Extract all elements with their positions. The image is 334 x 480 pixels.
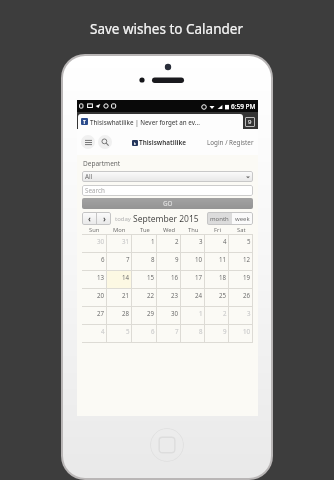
button[interactable]: 10 bbox=[181, 253, 205, 270]
button[interactable]: 4 bbox=[205, 235, 229, 252]
button[interactable]: 8 bbox=[181, 325, 205, 342]
staticText: Mon bbox=[113, 226, 126, 234]
button[interactable]: 29 bbox=[132, 307, 157, 324]
button[interactable]: 22 bbox=[132, 289, 157, 306]
button[interactable]: t bbox=[132, 138, 187, 147]
button[interactable]: 26 bbox=[229, 289, 253, 306]
button[interactable]: 18 bbox=[205, 271, 229, 288]
button[interactable]: 17 bbox=[181, 271, 205, 288]
staticText: Thisiswhatilike | Never forget an ev... bbox=[90, 118, 200, 126]
button[interactable]: 30 bbox=[157, 307, 181, 324]
button[interactable]: Next month bbox=[97, 212, 111, 225]
button[interactable]: T bbox=[81, 114, 240, 129]
staticText: 31 bbox=[122, 237, 130, 245]
button[interactable]: Previous month bbox=[82, 212, 96, 225]
button[interactable]: Home bbox=[150, 428, 184, 462]
button[interactable]: 23 bbox=[157, 289, 181, 306]
staticText: 4 bbox=[101, 327, 105, 335]
staticText: 18 bbox=[219, 273, 227, 281]
button[interactable]: Tabs bbox=[245, 117, 255, 127]
staticText: 8 bbox=[151, 255, 155, 263]
button[interactable]: 6 bbox=[132, 325, 157, 342]
staticText: 21 bbox=[122, 291, 130, 299]
button[interactable]: 13 bbox=[82, 271, 107, 288]
button[interactable]: 16 bbox=[157, 271, 181, 288]
button[interactable]: 27 bbox=[82, 307, 107, 324]
button[interactable]: 30 bbox=[82, 235, 107, 252]
button[interactable]: 8 bbox=[132, 253, 157, 270]
button[interactable]: 1 bbox=[181, 307, 205, 324]
staticText: 1 bbox=[199, 309, 203, 317]
button[interactable]: Search bbox=[98, 135, 112, 149]
button[interactable]: All bbox=[82, 171, 253, 182]
button[interactable]: 4 bbox=[82, 325, 107, 342]
button[interactable]: 1 bbox=[132, 235, 157, 252]
staticText: 22 bbox=[147, 291, 155, 299]
staticText: Fri bbox=[214, 226, 221, 234]
button[interactable]: 9 bbox=[157, 253, 181, 270]
button[interactable]: week bbox=[235, 212, 250, 225]
staticText: T bbox=[83, 119, 86, 125]
button[interactable]: 6 bbox=[82, 253, 107, 270]
staticText: 15 bbox=[147, 273, 155, 281]
button[interactable]: 7 bbox=[107, 253, 132, 270]
staticText: 30 bbox=[97, 237, 105, 245]
staticText: 17 bbox=[195, 273, 203, 281]
staticText: t bbox=[134, 141, 136, 146]
staticText: 23 bbox=[171, 291, 179, 299]
staticText: 20 bbox=[97, 291, 105, 299]
button[interactable]: 5 bbox=[229, 235, 253, 252]
button[interactable]: 10 bbox=[229, 325, 253, 342]
staticText: 8 bbox=[199, 327, 203, 335]
button[interactable]: 11 bbox=[205, 253, 229, 270]
button[interactable]: 2 bbox=[205, 307, 229, 324]
button[interactable]: 25 bbox=[205, 289, 229, 306]
staticText: 28 bbox=[122, 309, 130, 317]
staticText: 12 bbox=[243, 255, 251, 263]
staticText: Thu bbox=[188, 226, 199, 234]
button[interactable]: 24 bbox=[181, 289, 205, 306]
staticText: GO bbox=[163, 199, 173, 208]
button[interactable]: 15 bbox=[132, 271, 157, 288]
button[interactable]: 3 bbox=[229, 307, 253, 324]
button[interactable]: 2 bbox=[157, 235, 181, 252]
staticText: 6 bbox=[101, 255, 105, 263]
staticText: 9 bbox=[223, 327, 227, 335]
button[interactable]: 9 bbox=[205, 325, 229, 342]
button[interactable]: 21 bbox=[107, 289, 132, 306]
staticText: Save wishes to Calander bbox=[90, 20, 244, 38]
staticText: 2 bbox=[175, 237, 179, 245]
staticText: 11 bbox=[219, 255, 227, 263]
staticText: Tue bbox=[140, 226, 150, 234]
button[interactable]: 20 bbox=[82, 289, 107, 306]
staticText: 6 bbox=[151, 327, 155, 335]
button[interactable]: month bbox=[210, 212, 229, 225]
staticText: Search bbox=[85, 186, 105, 195]
staticText: 27 bbox=[97, 309, 105, 317]
button[interactable]: 19 bbox=[229, 271, 253, 288]
staticText: 3 bbox=[247, 309, 251, 317]
staticText: month bbox=[210, 215, 229, 223]
staticText: 24 bbox=[195, 291, 203, 299]
button[interactable]: GO bbox=[82, 198, 253, 209]
staticText: Sat bbox=[237, 226, 246, 234]
button[interactable]: 5 bbox=[107, 325, 132, 342]
staticText: 13 bbox=[97, 273, 105, 281]
staticText: 10 bbox=[243, 327, 251, 335]
staticText: › bbox=[103, 213, 106, 224]
staticText: 30 bbox=[171, 309, 179, 317]
button[interactable]: Login / Register bbox=[207, 138, 254, 147]
button[interactable]: 3 bbox=[181, 235, 205, 252]
button[interactable]: Menu bbox=[81, 135, 95, 149]
button[interactable]: 31 bbox=[107, 235, 132, 252]
staticText: Sun bbox=[89, 226, 100, 234]
button[interactable]: Search bbox=[82, 185, 253, 196]
button[interactable]: 28 bbox=[107, 307, 132, 324]
button[interactable]: today bbox=[115, 215, 131, 223]
button[interactable]: 12 bbox=[229, 253, 253, 270]
button[interactable]: 7 bbox=[157, 325, 181, 342]
staticText: 29 bbox=[147, 309, 155, 317]
staticText: 26 bbox=[243, 291, 251, 299]
staticText: Department bbox=[83, 159, 121, 168]
button[interactable]: 14 bbox=[107, 271, 132, 288]
